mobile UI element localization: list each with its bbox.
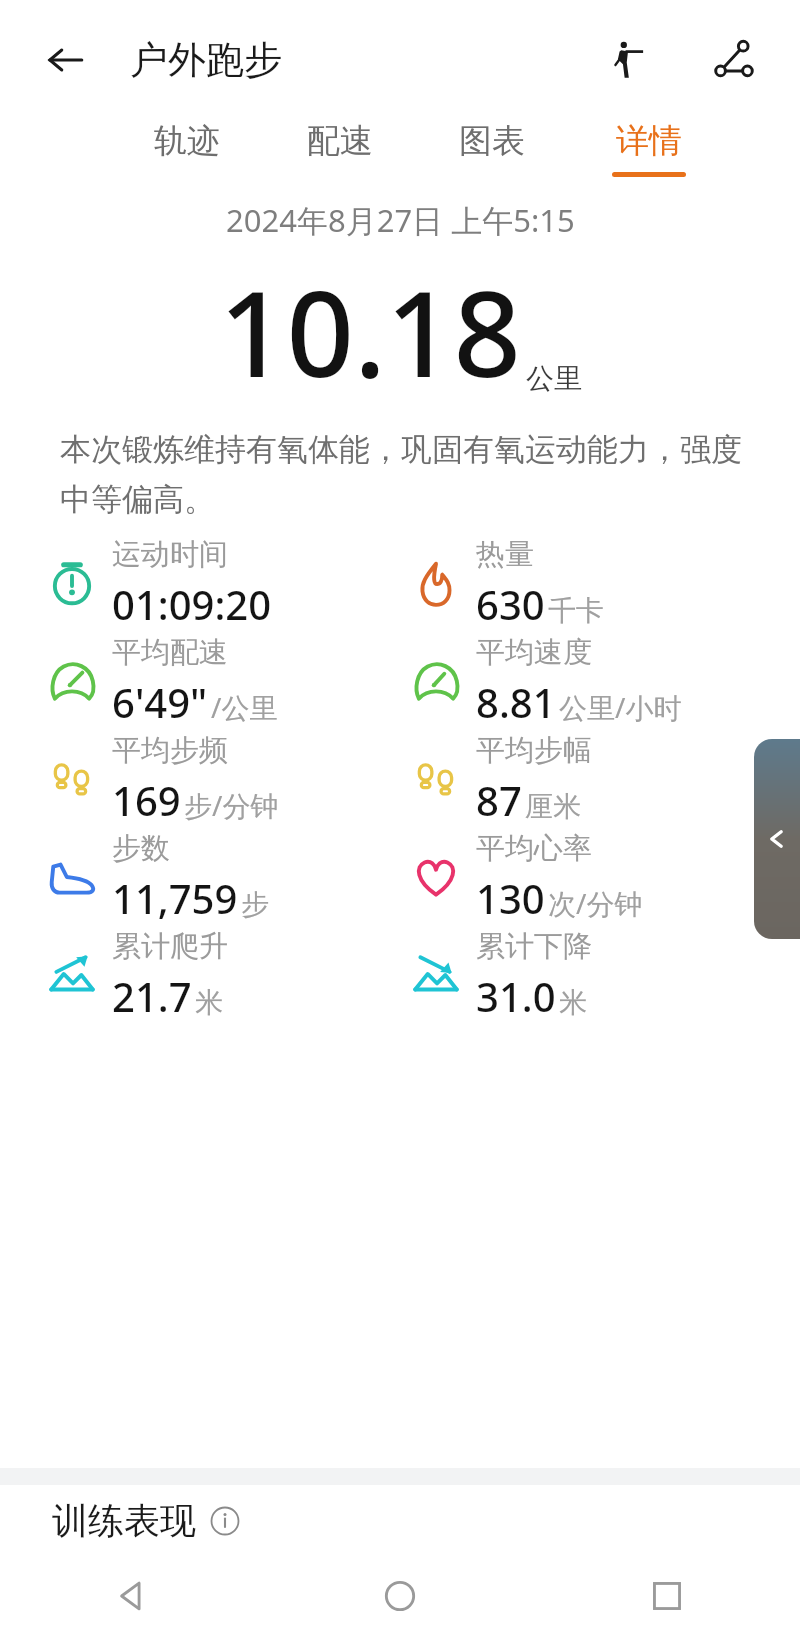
staticText: 训练表现 (52, 1498, 196, 1543)
staticText: 平均步频 (112, 732, 228, 769)
button[interactable]: 轨迹 (150, 120, 224, 177)
staticText: 本次锻炼维持有氧体能，巩固有氧运动能力，强度中等偏高。 (60, 430, 744, 520)
staticText: 31.0 (476, 969, 556, 1023)
button[interactable]: 平均心率 (410, 828, 800, 926)
button[interactable]: 步数 (46, 828, 400, 926)
button[interactable]: 运动时间 (46, 534, 400, 632)
button[interactable]: Back (0, 1555, 266, 1637)
staticText: 平均心率 (476, 830, 592, 867)
button[interactable]: 平均速度 (410, 632, 800, 730)
staticText: 130 (476, 871, 545, 925)
staticText: 630 (476, 577, 545, 631)
staticText: 厘米 (525, 789, 581, 824)
staticText: 累计爬升 (112, 928, 228, 965)
staticText: 运动时间 (112, 536, 228, 573)
button[interactable]: 图表 (455, 120, 529, 177)
staticText: 21.7 (112, 969, 192, 1023)
staticText: 87 (476, 773, 522, 827)
staticText: 公里/小时 (559, 688, 682, 726)
button[interactable]: 配速 (303, 120, 377, 177)
staticText: 米 (195, 985, 223, 1020)
staticText: 配速 (307, 120, 373, 162)
button[interactable]: Back (34, 29, 96, 91)
staticText: 10.18 (219, 251, 522, 412)
staticText: 公里 (526, 361, 582, 396)
staticText: 6'49" (112, 675, 208, 729)
button[interactable]: Share (702, 28, 766, 92)
staticText: 详情 (616, 120, 682, 162)
button[interactable]: 平均步频 (46, 730, 400, 828)
staticText: 步/分钟 (184, 786, 279, 824)
button[interactable]: Open panel (754, 739, 800, 939)
staticText: 平均配速 (112, 634, 228, 671)
button[interactable]: 训练表现 (52, 1498, 240, 1543)
staticText: 次/分钟 (548, 884, 643, 922)
button[interactable]: Recents (533, 1555, 800, 1637)
staticText: 平均速度 (476, 634, 592, 671)
staticText: 千卡 (548, 593, 604, 628)
staticText: 户外跑步 (130, 36, 282, 84)
staticText: 图表 (459, 120, 525, 162)
button[interactable]: 热量 (410, 534, 800, 632)
button[interactable]: Home (266, 1555, 533, 1637)
staticText: 米 (559, 985, 587, 1020)
staticText: 累计下降 (476, 928, 592, 965)
staticText: 8.81 (476, 675, 556, 729)
button[interactable]: 累计爬升 (46, 926, 400, 1024)
button[interactable]: 平均步幅 (410, 730, 800, 828)
staticText: 热量 (476, 536, 534, 573)
button[interactable]: Workout type (596, 28, 660, 92)
staticText: 01:09:20 (112, 577, 272, 631)
staticText: 11,759 (112, 871, 238, 925)
button[interactable]: 详情 (608, 120, 690, 177)
staticText: 2024年8月27日 上午5:15 (226, 199, 575, 241)
staticText: /公里 (211, 688, 278, 726)
button[interactable]: 累计下降 (410, 926, 800, 1024)
staticText: 步数 (112, 830, 170, 867)
staticText: 轨迹 (154, 120, 220, 162)
staticText: 步 (241, 887, 269, 922)
staticText: 平均步幅 (476, 732, 592, 769)
button[interactable]: 平均配速 (46, 632, 400, 730)
staticText: 169 (112, 773, 181, 827)
